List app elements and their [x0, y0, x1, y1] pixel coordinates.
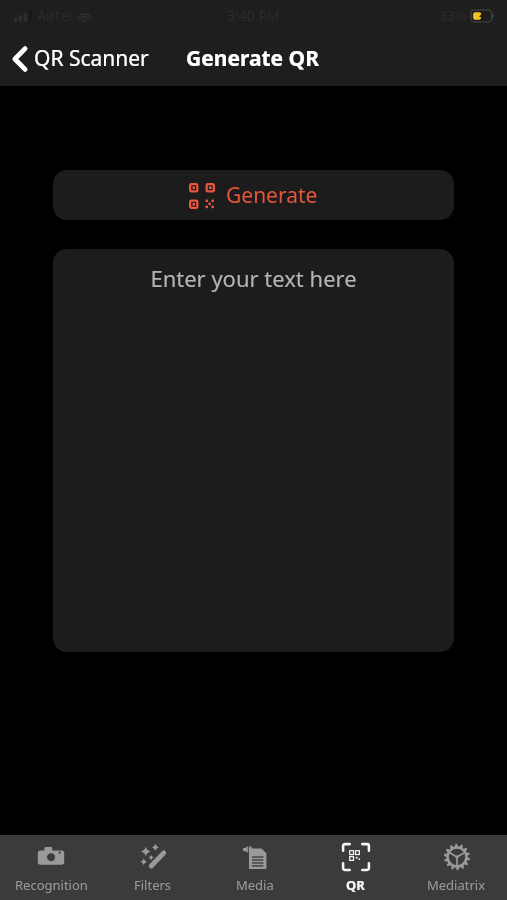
button[interactable]: Generate: [53, 170, 454, 220]
button[interactable]: Mediatrix: [406, 835, 507, 900]
staticText: Enter your text here: [150, 263, 357, 293]
staticText: Filters: [134, 876, 172, 894]
other: Back: [12, 46, 28, 72]
staticText: 3:40 PM: [227, 6, 280, 25]
staticText: Airtel: [37, 6, 72, 25]
staticText: 33%: [439, 6, 467, 25]
button[interactable]: Filters: [102, 835, 204, 900]
staticText: Generate: [226, 181, 318, 210]
button[interactable]: Media: [204, 835, 305, 900]
staticText: Mediatrix: [427, 876, 486, 894]
button[interactable]: Recognition: [0, 835, 102, 900]
button[interactable]: QR: [305, 835, 406, 900]
button[interactable]: Enter your text here: [53, 249, 454, 652]
staticText: QR Scanner: [34, 44, 149, 73]
button[interactable]: Back: [8, 38, 153, 79]
staticText: Generate QR: [186, 44, 319, 73]
staticText: QR: [346, 876, 365, 894]
staticText: Media: [236, 876, 274, 894]
staticText: Recognition: [15, 876, 88, 894]
